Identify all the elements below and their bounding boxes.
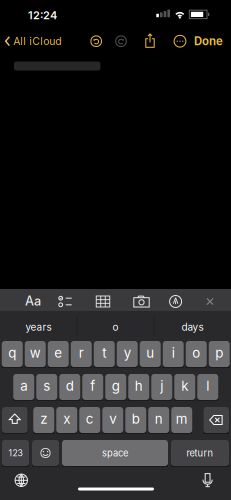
staticText: t [102,345,106,361]
button[interactable]: o [80,316,150,338]
button[interactable]: c [79,407,100,433]
button[interactable]: r [71,341,92,367]
button[interactable]: return [171,440,229,466]
button[interactable]: Format [25,293,41,309]
button[interactable]: All iCloud [5,35,61,47]
staticText: p [215,345,223,361]
staticText: h [135,378,143,394]
staticText: Done [194,34,223,48]
staticText: d [66,378,74,394]
button[interactable]: years [3,316,73,338]
button[interactable]: w [25,341,46,367]
button[interactable]: d [59,374,80,400]
staticText: u [146,345,154,361]
button[interactable]: z [33,407,54,433]
button[interactable]: e [48,341,69,367]
staticText: x [63,411,70,427]
staticText: r [79,345,84,361]
button[interactable]: Emoji [32,440,59,466]
button[interactable]: Redo [114,35,127,48]
staticText: m [176,411,188,427]
button[interactable]: p [209,341,230,367]
staticText: Aa [25,293,41,309]
button[interactable]: t [94,341,115,367]
button[interactable]: space [62,440,168,466]
button[interactable]: days [157,316,227,338]
staticText: o [192,345,200,361]
staticText: w [30,345,41,361]
button[interactable]: More [173,35,186,48]
button[interactable]: Table [95,295,110,308]
button[interactable]: g [105,374,126,400]
button[interactable]: x [56,407,77,433]
button[interactable]: Markup [169,294,183,308]
staticText: l [206,378,209,394]
staticText: All iCloud [13,35,61,47]
button[interactable]: Undo [90,35,103,48]
button[interactable]: a [13,374,34,400]
staticText: z [40,411,47,427]
staticText: k [181,378,188,394]
button[interactable]: j [151,374,172,400]
button[interactable]: b [125,407,146,433]
button[interactable]: o [186,341,207,367]
button[interactable]: Done [194,34,223,48]
button[interactable]: Shift [2,407,27,433]
button[interactable]: Dictate [201,473,215,488]
staticText: e [54,345,62,361]
staticText: j [160,378,163,394]
staticText: c [86,411,94,427]
staticText: 12:24 [28,9,57,22]
staticText: v [109,411,116,427]
staticText: b [132,411,140,427]
button[interactable]: i [163,341,184,367]
button[interactable]: Checklist [57,295,72,308]
button[interactable]: Share [143,33,156,48]
button[interactable]: l [197,374,218,400]
staticText: n [155,411,163,427]
button[interactable]: Close [204,295,216,307]
staticText: return [186,447,213,459]
button[interactable]: v [102,407,123,433]
button[interactable]: q [2,341,23,367]
button[interactable]: Next keyboard [14,473,29,488]
button[interactable]: y [117,341,138,367]
button[interactable]: k [174,374,195,400]
button[interactable]: n [148,407,169,433]
staticText: s [43,378,50,394]
button[interactable]: s [36,374,57,400]
button[interactable]: u [140,341,161,367]
staticText: 123 [8,448,22,458]
button[interactable]: f [82,374,103,400]
staticText: q [8,345,16,361]
button[interactable]: h [128,374,149,400]
staticText: o [112,321,118,333]
staticText: g [112,378,120,394]
staticText: a [20,378,27,394]
button[interactable]: 123 [2,440,29,466]
staticText: days [181,321,203,333]
staticText: years [25,321,51,333]
staticText: y [124,345,131,361]
button[interactable]: Camera [133,294,150,307]
button[interactable]: m [171,407,192,433]
staticText: i [172,345,175,361]
button[interactable]: Delete [203,407,229,433]
staticText: space [102,447,128,459]
staticText: f [90,378,95,394]
